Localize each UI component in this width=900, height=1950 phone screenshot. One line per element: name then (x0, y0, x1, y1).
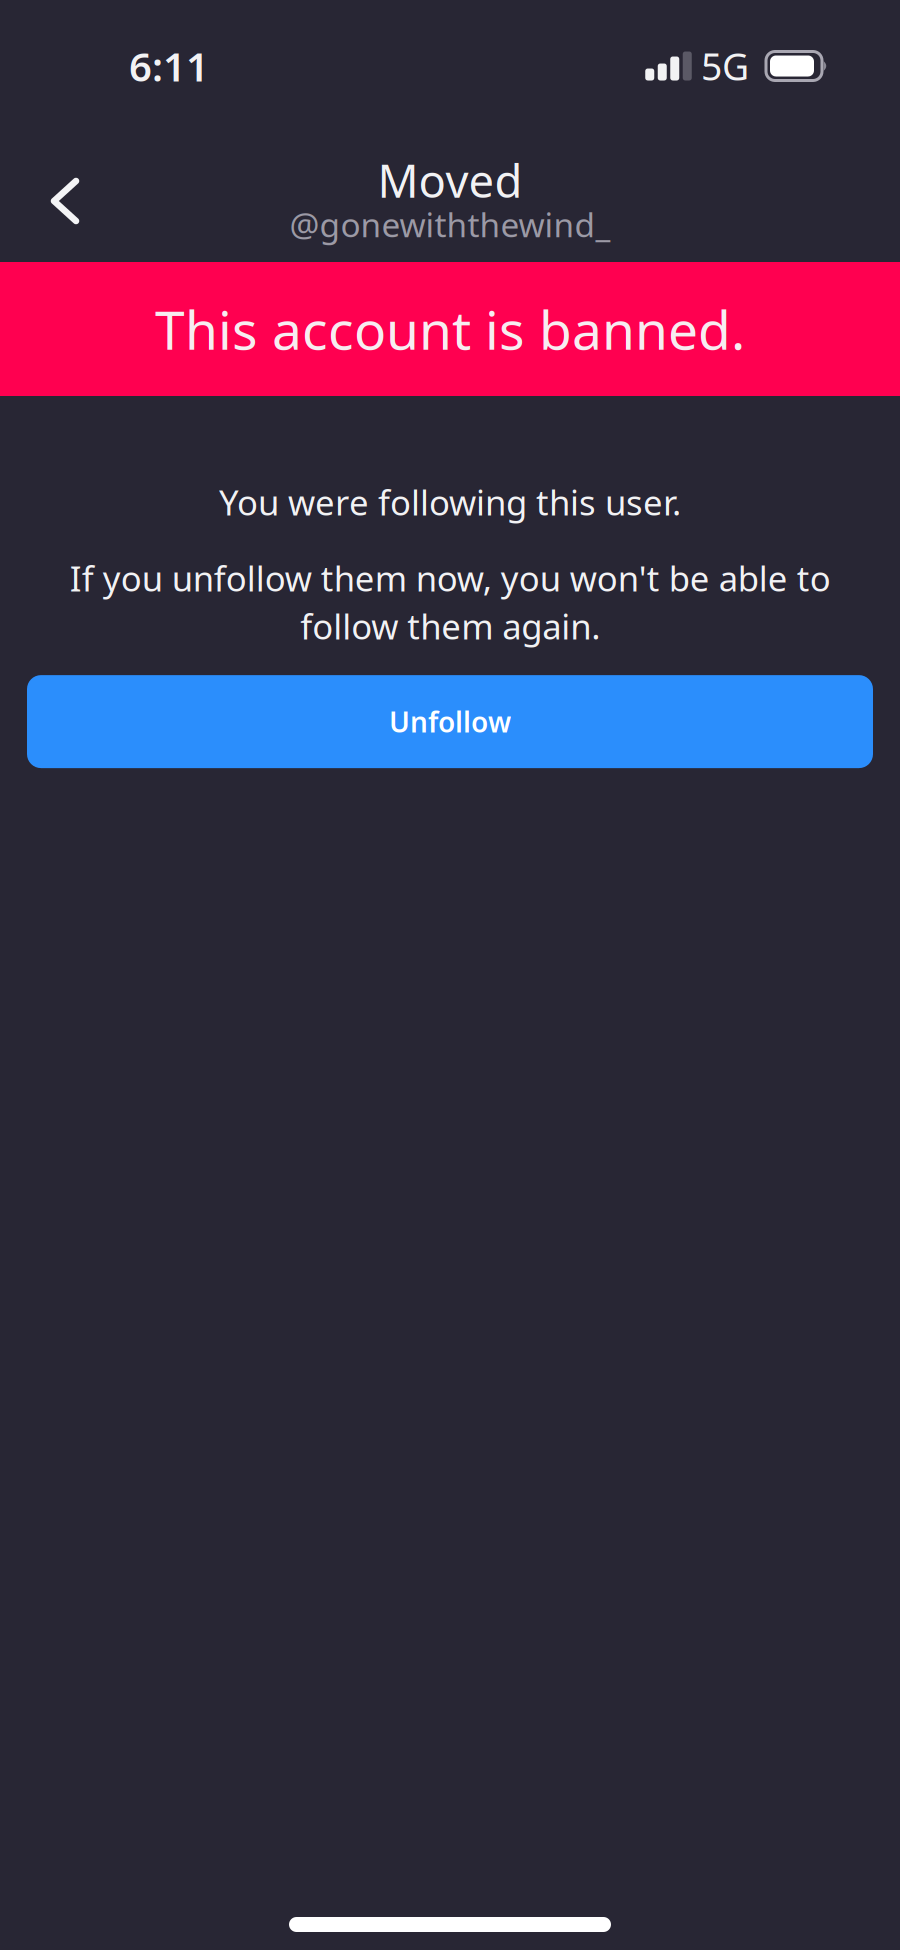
staticText: 5G (701, 41, 749, 91)
staticText: This account is banned. (155, 294, 745, 364)
staticText: Moved (377, 150, 522, 210)
staticText: Unfollow (389, 703, 511, 740)
button[interactable]: Unfollow (27, 675, 873, 768)
staticText: If you unfollow them now, you won't be a… (69, 555, 830, 649)
staticText: @gonewiththewind_ (289, 202, 610, 246)
staticText: You were following this user. (219, 479, 681, 525)
staticText: 6:11 (129, 39, 209, 92)
button[interactable]: Back (0, 132, 130, 270)
